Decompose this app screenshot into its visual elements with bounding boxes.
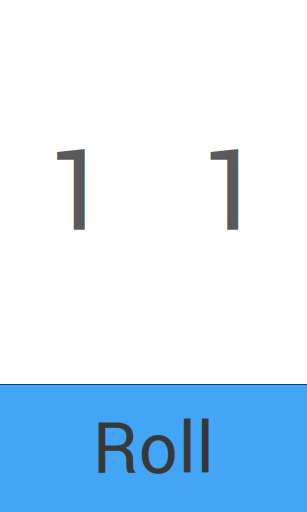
staticText: Roll — [92, 400, 214, 500]
staticText: 1 — [47, 111, 111, 275]
button[interactable]: Roll — [0, 384, 307, 512]
staticText: 1 — [200, 111, 264, 275]
